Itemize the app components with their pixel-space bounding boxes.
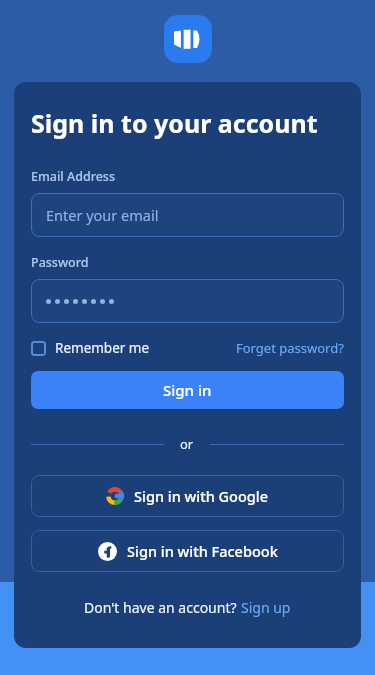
staticText: Email Address bbox=[31, 168, 116, 185]
button[interactable]: Enter your email bbox=[31, 193, 344, 237]
staticText: Sign up bbox=[241, 598, 291, 617]
button[interactable]: Don't have an account? bbox=[31, 598, 344, 617]
staticText: Don't have an account? bbox=[84, 598, 241, 617]
staticText: Enter your email bbox=[46, 205, 159, 225]
other: App logo bbox=[164, 15, 212, 63]
staticText: Sign in bbox=[163, 380, 212, 400]
button[interactable]: Forget password? bbox=[236, 337, 344, 359]
staticText: Sign in with Google bbox=[134, 486, 269, 506]
staticText: or bbox=[180, 435, 194, 453]
staticText: Forget password? bbox=[236, 339, 344, 357]
button[interactable]: Sign in with Google bbox=[31, 475, 344, 517]
staticText: Sign in to your account bbox=[31, 106, 318, 140]
button[interactable]: Remember me bbox=[31, 337, 150, 359]
button[interactable]: Sign in with Facebook bbox=[31, 530, 344, 572]
staticText: Remember me bbox=[55, 339, 150, 357]
button[interactable] bbox=[31, 279, 344, 323]
staticText: Sign in with Facebook bbox=[127, 541, 278, 561]
staticText: Password bbox=[31, 254, 89, 271]
button[interactable]: Sign in bbox=[31, 371, 344, 409]
